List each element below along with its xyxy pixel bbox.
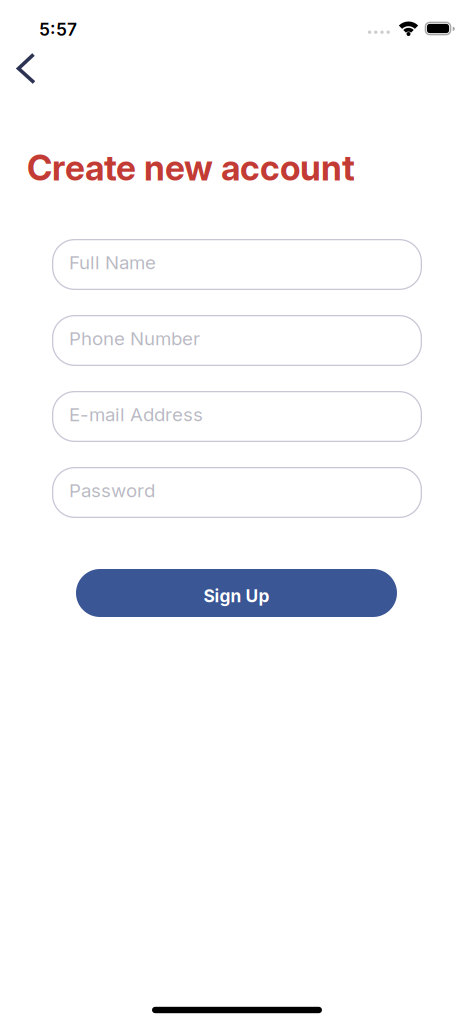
button[interactable]: Sign Up [76, 569, 397, 617]
staticText: Full Name [69, 251, 156, 273]
staticText: E-mail Address [69, 403, 203, 425]
staticText: Sign Up [203, 586, 269, 606]
button[interactable]: Full Name [52, 239, 422, 290]
staticText: 5:57 [39, 19, 77, 40]
staticText: Password [69, 479, 155, 501]
staticText: Phone Number [69, 327, 200, 349]
staticText: Create new account [27, 148, 355, 188]
button[interactable]: Phone Number [52, 315, 422, 366]
button[interactable]: E-mail Address [52, 391, 422, 442]
button[interactable] [3, 46, 47, 90]
button[interactable]: Password [52, 467, 422, 518]
